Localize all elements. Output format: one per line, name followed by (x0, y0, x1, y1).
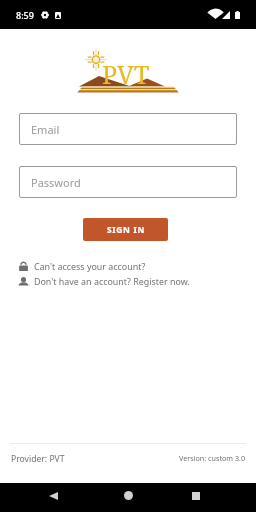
button[interactable]: Home (104, 484, 152, 507)
staticText: Can't access your account? (34, 260, 146, 272)
staticText: Provider: PVT (11, 453, 65, 465)
button[interactable]: Recent apps (172, 484, 220, 507)
button[interactable]: Email (19, 113, 237, 145)
button[interactable]: Can't access your account? (18, 260, 240, 272)
staticText: PVT (102, 57, 150, 91)
button[interactable]: Password (19, 166, 237, 198)
staticText: SIGN IN (107, 224, 145, 235)
staticText: Password (31, 175, 81, 190)
button[interactable]: Back (29, 484, 77, 507)
staticText: Don't have an account? Register now. (34, 275, 190, 287)
button[interactable]: Don't have an account? Register now. (18, 275, 240, 287)
staticText: Email (31, 122, 60, 137)
button[interactable]: SIGN IN (83, 218, 168, 241)
staticText: 8:59 (16, 9, 34, 21)
staticText: Version: custom 3.0 (179, 453, 246, 463)
